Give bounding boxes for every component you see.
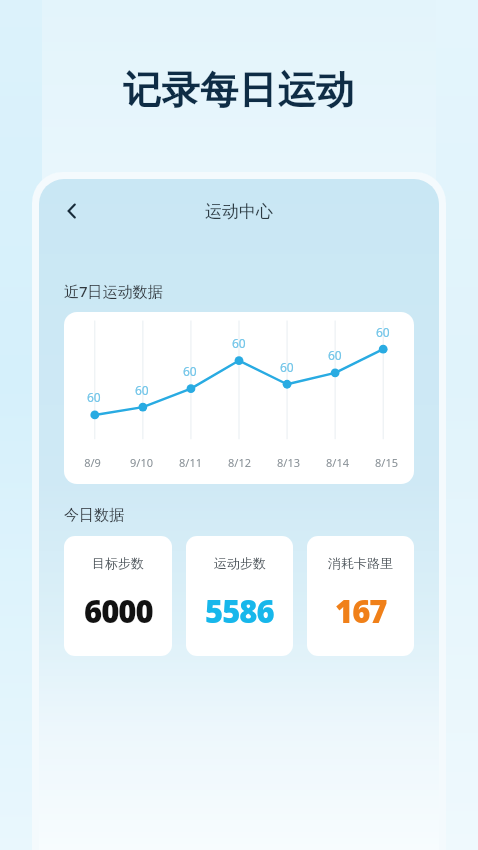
staticText: 60	[135, 382, 149, 398]
staticText: 近7日运动数据	[64, 281, 163, 301]
staticText: 8/12	[228, 455, 251, 470]
staticText: 8/14	[326, 455, 349, 470]
staticText: 8/9	[84, 455, 101, 470]
staticText: 60	[183, 363, 197, 379]
button[interactable]: 消耗卡路里	[307, 536, 414, 656]
staticText: 目标步数	[92, 555, 144, 571]
staticText: 记录每日运动	[123, 66, 355, 114]
staticText: 9/10	[130, 455, 153, 470]
staticText: 今日数据	[64, 506, 124, 525]
staticText: 运动中心	[205, 201, 273, 222]
staticText: 运动步数	[214, 555, 266, 571]
staticText: 8/11	[179, 455, 202, 470]
staticText: 167	[335, 590, 387, 632]
staticText: 60	[280, 359, 294, 375]
staticText: 60	[328, 347, 342, 363]
staticText: 60	[87, 389, 101, 405]
staticText: 60	[376, 324, 390, 340]
button[interactable]: Back	[51, 190, 93, 232]
staticText: 6000	[84, 590, 153, 632]
button[interactable]: 运动步数	[186, 536, 293, 656]
staticText: 60	[232, 335, 246, 351]
staticText: 消耗卡路里	[328, 555, 393, 571]
button[interactable]: 目标步数	[64, 536, 172, 656]
staticText: 8/15	[375, 455, 398, 470]
staticText: 8/13	[277, 455, 300, 470]
button[interactable]: 60	[64, 312, 414, 484]
staticText: 5586	[205, 590, 274, 632]
